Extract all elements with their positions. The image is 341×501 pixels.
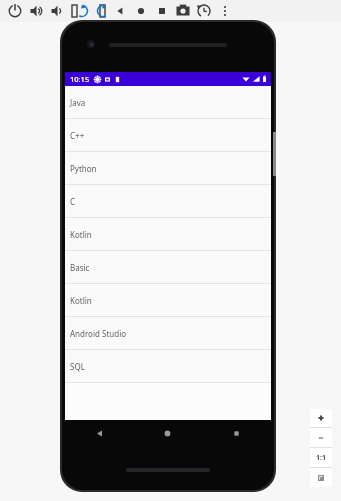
button[interactable]: Zoom in xyxy=(310,409,332,427)
button[interactable]: Overview xyxy=(151,0,172,22)
staticText: SQL xyxy=(70,361,85,372)
button[interactable]: C++ xyxy=(65,119,271,152)
button[interactable]: Basic xyxy=(65,251,271,284)
staticText: Kotlin xyxy=(70,295,92,306)
button[interactable]: Fit to screen xyxy=(310,468,332,487)
staticText: C++ xyxy=(70,130,85,141)
staticText: Kotlin xyxy=(70,229,92,240)
button[interactable]: More xyxy=(214,0,235,22)
staticText: 1:1 xyxy=(316,453,326,463)
button[interactable]: Volume down xyxy=(46,0,67,22)
button[interactable]: Recent apps xyxy=(202,420,271,446)
button[interactable]: Android Studio xyxy=(65,317,271,350)
button[interactable]: Java xyxy=(65,86,271,119)
staticText: C xyxy=(70,196,76,207)
staticText: Basic xyxy=(70,262,90,273)
button[interactable]: Python xyxy=(65,152,271,185)
button[interactable]: Zoom out xyxy=(310,428,332,447)
staticText: 10:15 xyxy=(70,74,90,84)
staticText: Android Studio xyxy=(70,328,127,339)
button[interactable]: Kotlin xyxy=(65,218,271,251)
button[interactable]: Back xyxy=(109,0,130,22)
button[interactable]: 1:1 xyxy=(310,448,332,467)
staticText: Python xyxy=(70,163,97,174)
button[interactable]: Power xyxy=(4,0,25,22)
button[interactable]: Home xyxy=(133,420,202,446)
button[interactable]: SQL xyxy=(65,350,271,383)
button[interactable]: Record screen xyxy=(193,0,214,22)
button[interactable]: Home xyxy=(130,0,151,22)
button[interactable]: Volume up xyxy=(25,0,46,22)
button[interactable]: Take screenshot xyxy=(172,0,193,22)
staticText: Java xyxy=(70,97,86,108)
button[interactable]: Back xyxy=(65,420,133,446)
button[interactable]: C xyxy=(65,185,271,218)
button[interactable]: Rotate right xyxy=(88,0,109,22)
button[interactable]: Rotate left xyxy=(67,0,88,22)
button[interactable]: Kotlin xyxy=(65,284,271,317)
